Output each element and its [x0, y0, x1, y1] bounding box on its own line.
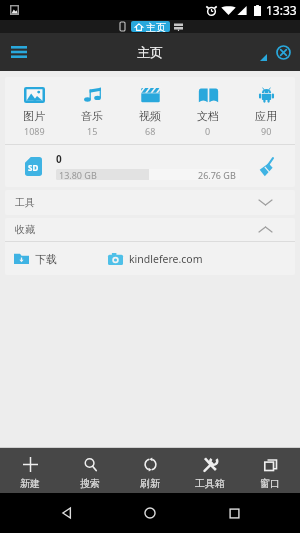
staticText: 0 [56, 152, 62, 166]
staticText: 68 [145, 125, 156, 137]
button[interactable]: Recents [217, 496, 251, 530]
staticText: 文档 [197, 109, 219, 123]
staticText: 图片 [23, 109, 45, 123]
button[interactable]: Network [170, 20, 187, 33]
button[interactable]: Device [114, 20, 131, 33]
button[interactable]: 刷新 [120, 448, 180, 493]
button[interactable]: 视频 [121, 77, 179, 144]
button[interactable]: Clean [254, 154, 278, 178]
button[interactable]: SD [5, 145, 295, 187]
button[interactable]: 新建 [0, 448, 60, 493]
button[interactable]: Back [50, 496, 84, 530]
staticText: 90 [261, 125, 272, 137]
button[interactable]: 窗口 [240, 448, 300, 493]
button[interactable]: Menu [2, 35, 36, 69]
staticText: 1089 [24, 125, 45, 137]
staticText: 视频 [139, 109, 161, 123]
staticText: 26.76 GB [198, 169, 236, 180]
staticText: SD [28, 162, 39, 173]
button[interactable]: 收藏 [5, 218, 295, 241]
button[interactable]: 音乐 [63, 77, 121, 144]
staticText: 0 [205, 125, 211, 137]
staticText: 音乐 [81, 109, 103, 123]
button[interactable]: 工具箱 [180, 448, 240, 493]
staticText: 13.80 GB [59, 169, 97, 180]
button[interactable]: Close [270, 39, 296, 65]
staticText: 刷新 [140, 477, 160, 490]
button[interactable]: 下载 [5, 242, 63, 275]
staticText: kindlefere.com [129, 252, 203, 266]
staticText: 工具箱 [195, 477, 225, 490]
button[interactable]: 应用 [237, 77, 295, 144]
staticText: 主页 [146, 21, 166, 32]
staticText: 窗口 [260, 477, 280, 490]
staticText: 工具 [15, 196, 35, 209]
staticText: 应用 [255, 109, 277, 123]
staticText: 搜索 [80, 477, 100, 490]
staticText: 主页 [137, 44, 163, 60]
button[interactable]: 文档 [179, 77, 237, 144]
staticText: 13:33 [266, 2, 297, 18]
staticText: 收藏 [15, 223, 35, 236]
button[interactable]: 工具 [5, 190, 295, 215]
button[interactable]: 图片 [5, 77, 63, 144]
button[interactable]: kindlefere.com [108, 242, 209, 275]
button[interactable]: 主页 [131, 21, 170, 32]
staticText: 新建 [20, 477, 40, 490]
staticText: 下载 [35, 252, 57, 266]
button[interactable]: 搜索 [60, 448, 120, 493]
button[interactable]: Home [133, 496, 167, 530]
staticText: 15 [87, 125, 98, 137]
